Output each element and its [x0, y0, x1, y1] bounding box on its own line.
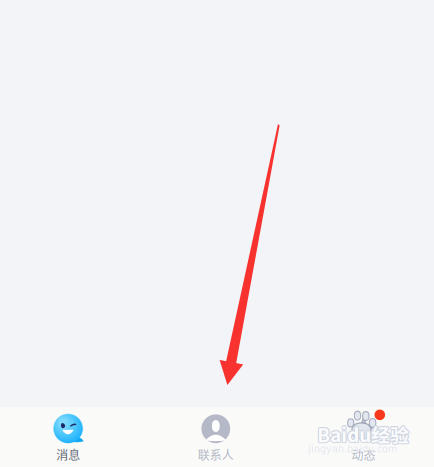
button[interactable]: 联系人: [144, 409, 288, 467]
staticText: Baidu经验: [317, 422, 409, 449]
button[interactable]: 动态: [292, 409, 434, 467]
staticText: 消息: [56, 446, 80, 463]
staticText: Baidu经验: [317, 420, 409, 447]
staticText: Baidu经验: [318, 421, 410, 448]
staticText: jingyan.baidu.com: [308, 444, 397, 455]
staticText: Baidu经验: [318, 420, 410, 447]
staticText: Baidu经验: [318, 420, 410, 447]
button[interactable]: 消息: [0, 409, 140, 467]
staticText: Baidu经验: [317, 419, 409, 446]
staticText: Baidu经验: [316, 420, 408, 447]
staticText: Baidu经验: [316, 420, 408, 447]
staticText: 联系人: [198, 446, 234, 463]
staticText: Baidu经验: [316, 421, 408, 448]
staticText: 动态: [352, 446, 376, 463]
